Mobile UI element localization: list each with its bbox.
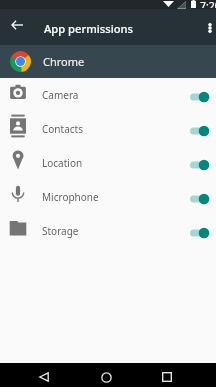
staticText: Storage (42, 224, 79, 238)
button[interactable]: Recent apps (153, 365, 181, 387)
button[interactable]: Microphone permission (187, 189, 213, 209)
staticText: 7:20 (200, 0, 216, 8)
button[interactable]: Navigate up (4, 12, 30, 38)
button[interactable]: Storage (0, 211, 216, 245)
button[interactable]: Storage permission (187, 223, 213, 243)
button[interactable]: Camera permission (187, 87, 213, 107)
staticText: App permissions (44, 21, 133, 36)
button[interactable]: Location (0, 143, 216, 177)
staticText: Camera (42, 88, 79, 102)
button[interactable]: Microphone (0, 177, 216, 211)
button[interactable]: Location permission (187, 155, 213, 175)
button[interactable]: Contacts permission (187, 121, 213, 141)
button[interactable]: Contacts (0, 109, 216, 143)
staticText: Location (42, 156, 83, 170)
button[interactable]: Camera (0, 75, 216, 109)
button[interactable]: Chrome (0, 45, 216, 78)
button[interactable]: More options (197, 15, 216, 41)
staticText: Contacts (42, 122, 83, 136)
staticText: Microphone (42, 190, 99, 204)
button[interactable]: Back (30, 365, 58, 387)
button[interactable]: Home (92, 365, 120, 387)
staticText: Chrome (43, 54, 85, 69)
